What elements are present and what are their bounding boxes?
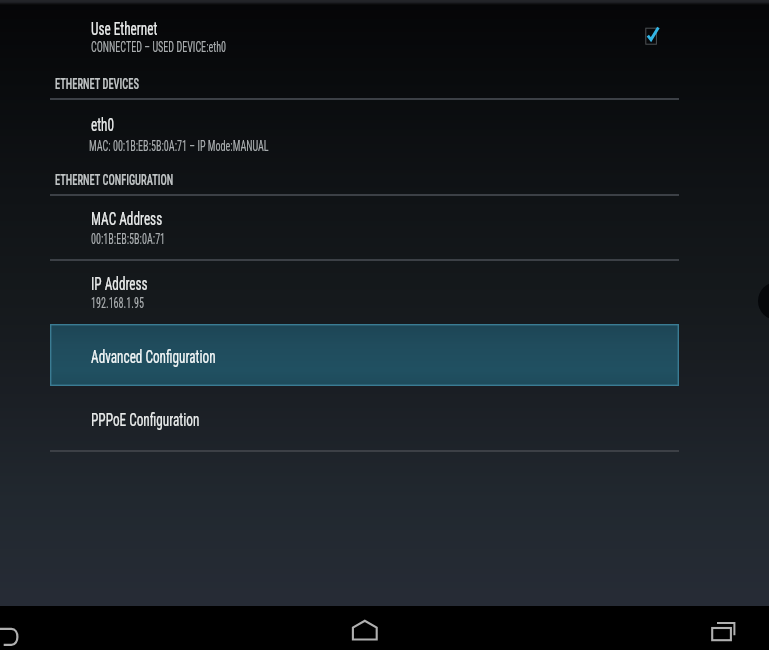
button[interactable]: Recent apps xyxy=(700,607,746,642)
button[interactable] xyxy=(50,324,679,386)
button[interactable]: MAC Address xyxy=(50,197,769,259)
button[interactable]: Home xyxy=(340,608,388,643)
staticText: ETHERNET CONFIGURATION xyxy=(55,171,173,189)
button[interactable]: Use Ethernet xyxy=(0,6,769,61)
staticText: Use Ethernet xyxy=(91,17,158,39)
button[interactable]: eth0 device xyxy=(50,104,769,164)
staticText: MAC: 00:1B:EB:5B:0A:71 – IP Mode:MANUAL xyxy=(89,138,269,155)
staticText: eth0 xyxy=(91,113,115,135)
staticText: ETHERNET DEVICES xyxy=(55,75,139,93)
staticText: 00:1B:EB:5B:0A:71 xyxy=(91,231,166,248)
button[interactable]: Use Ethernet, checked xyxy=(640,22,666,48)
staticText: Advanced Configuration xyxy=(91,345,216,367)
staticText: CONNECTED – USED DEVICE:eth0 xyxy=(91,39,226,56)
button[interactable]: Back xyxy=(0,619,22,650)
button[interactable]: PPPoE Configuration xyxy=(50,387,769,449)
staticText: MAC Address xyxy=(91,207,163,229)
staticText: PPPoE Configuration xyxy=(91,408,200,430)
staticText: 192.168.1.95 xyxy=(91,295,144,312)
button[interactable]: IP Address xyxy=(50,260,769,322)
staticText: IP Address xyxy=(91,272,148,294)
